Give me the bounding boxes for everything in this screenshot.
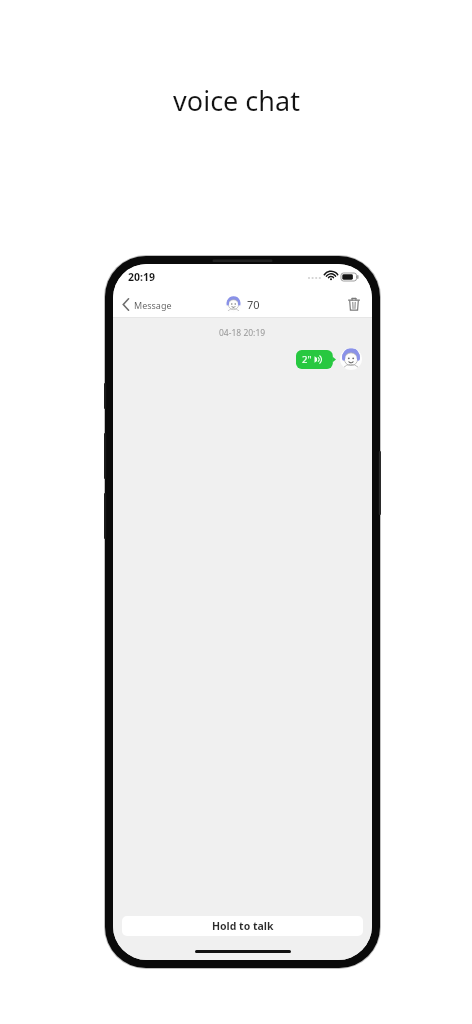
button[interactable]: Hold to talk	[122, 916, 363, 936]
staticText: voice chat	[173, 82, 300, 119]
staticText: Hold to talk	[212, 919, 274, 933]
staticText: 20:19	[128, 270, 155, 284]
button[interactable]: Delete conversation	[340, 293, 372, 315]
staticText: Message	[134, 299, 172, 311]
button[interactable]: Play voice message, 2 seconds	[296, 350, 336, 369]
staticText: 70	[247, 297, 260, 312]
button[interactable]: 70	[225, 296, 260, 313]
staticText: 04-18 20:19	[219, 327, 266, 339]
button[interactable]: Message	[113, 294, 180, 315]
staticText: 2"	[302, 353, 312, 366]
